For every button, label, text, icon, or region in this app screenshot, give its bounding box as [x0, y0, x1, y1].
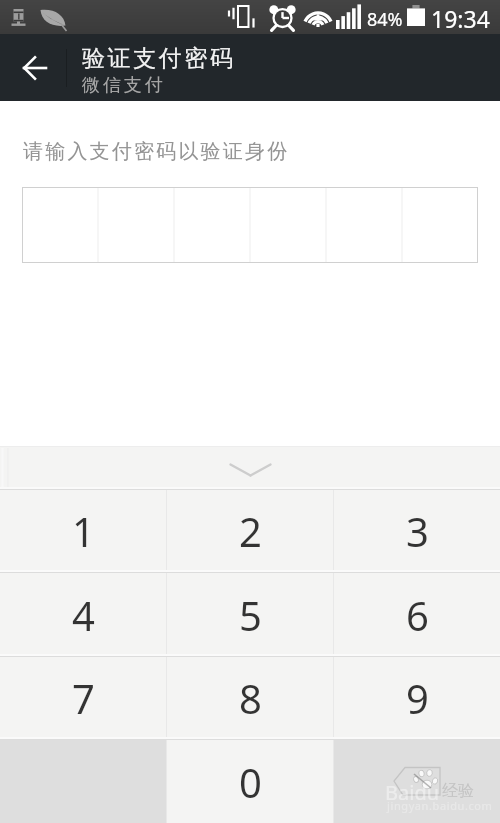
staticText: 请输入支付密码以验证身份 [23, 139, 290, 164]
staticText: 2 [239, 504, 262, 558]
staticText: 8 [239, 671, 262, 725]
staticText: 9 [406, 671, 429, 725]
button[interactable]: Delete [334, 740, 500, 823]
staticText: 4 [72, 588, 95, 642]
button[interactable]: Back [0, 34, 66, 101]
button[interactable]: 2 [167, 490, 333, 570]
button[interactable]: 1 [0, 490, 166, 570]
staticText: 1 [72, 504, 95, 558]
button[interactable]: 3 [334, 490, 500, 570]
staticText: 19:34 [431, 3, 490, 34]
staticText: 经验 [442, 781, 474, 801]
button[interactable]: 0 [167, 740, 333, 823]
staticText: jingyan.baidu.com [387, 798, 493, 813]
staticText: Baidu [385, 779, 440, 806]
staticText: 微信支付 [82, 74, 166, 97]
staticText: 0 [239, 755, 262, 809]
button[interactable]: 5 [167, 573, 333, 654]
button[interactable]: 8 [167, 657, 333, 737]
button[interactable]: 6 [334, 573, 500, 654]
button[interactable]: 4 [0, 573, 166, 654]
staticText: 5 [239, 588, 262, 642]
staticText: 6 [406, 588, 429, 642]
button[interactable]: 7 [0, 657, 166, 737]
staticText: 84% [367, 7, 403, 32]
staticText: 3 [406, 504, 429, 558]
staticText: 7 [72, 671, 95, 725]
staticText: 验证支付密码 [82, 44, 236, 73]
button[interactable]: Payment password input [22, 187, 478, 263]
button[interactable]: 9 [334, 657, 500, 737]
